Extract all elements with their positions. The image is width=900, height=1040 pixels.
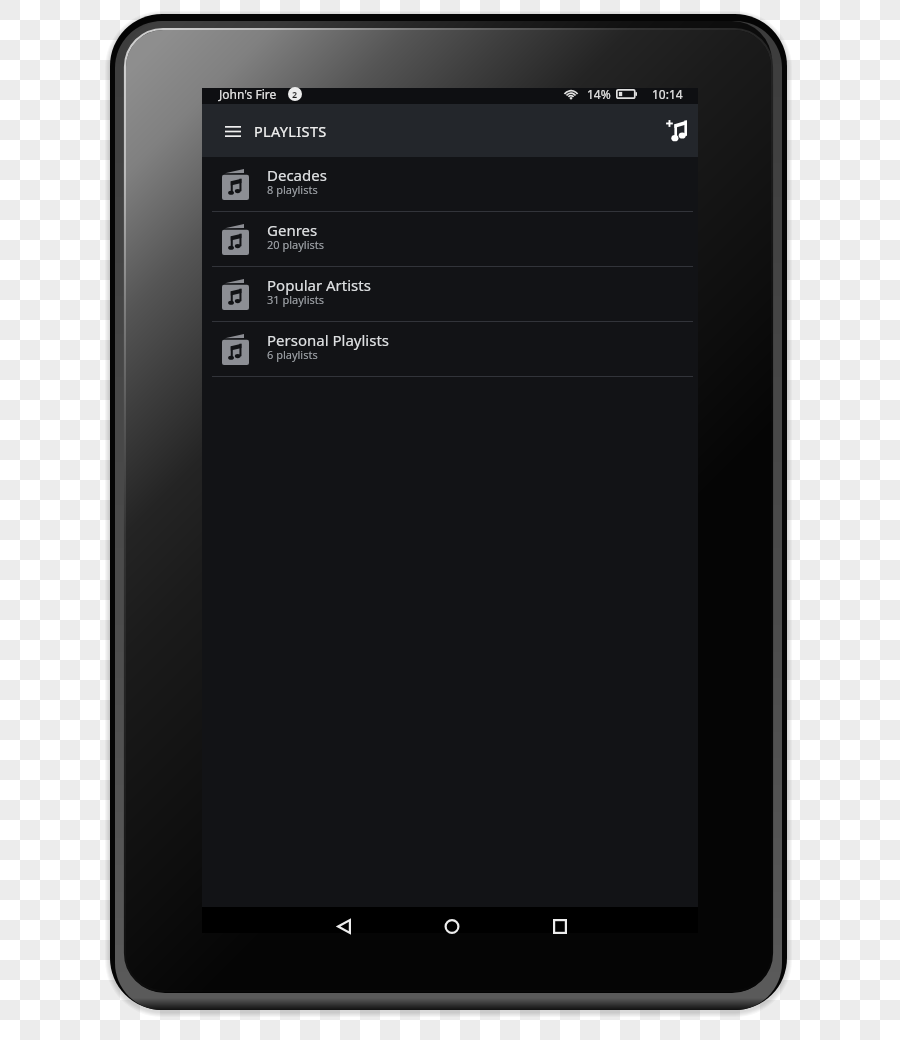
button[interactable]: Open navigation menu [218, 116, 248, 146]
staticText: 10:14 [652, 86, 683, 102]
button[interactable]: Home [430, 907, 474, 933]
staticText: 6 playlists [267, 347, 318, 362]
button[interactable]: Popular Artists [202, 267, 698, 322]
staticText: PLAYLISTS [254, 121, 327, 141]
button[interactable]: Recent apps [538, 907, 582, 933]
staticText: John's Fire [219, 86, 277, 102]
staticText: 20 playlists [267, 237, 325, 252]
staticText: Personal Playlists [267, 330, 389, 350]
staticText: Decades [267, 165, 327, 185]
staticText: Popular Artists [267, 275, 371, 295]
button[interactable]: Decades [202, 157, 698, 212]
staticText: 8 playlists [267, 182, 318, 197]
staticText: 31 playlists [267, 292, 325, 307]
staticText: 2 [292, 88, 298, 100]
button[interactable]: Back [322, 907, 366, 933]
button[interactable]: Genres [202, 212, 698, 267]
staticText: 14% [587, 86, 611, 102]
staticText: Genres [267, 220, 318, 240]
button[interactable]: Personal Playlists [202, 322, 698, 377]
button[interactable]: Add playlist [659, 114, 693, 148]
